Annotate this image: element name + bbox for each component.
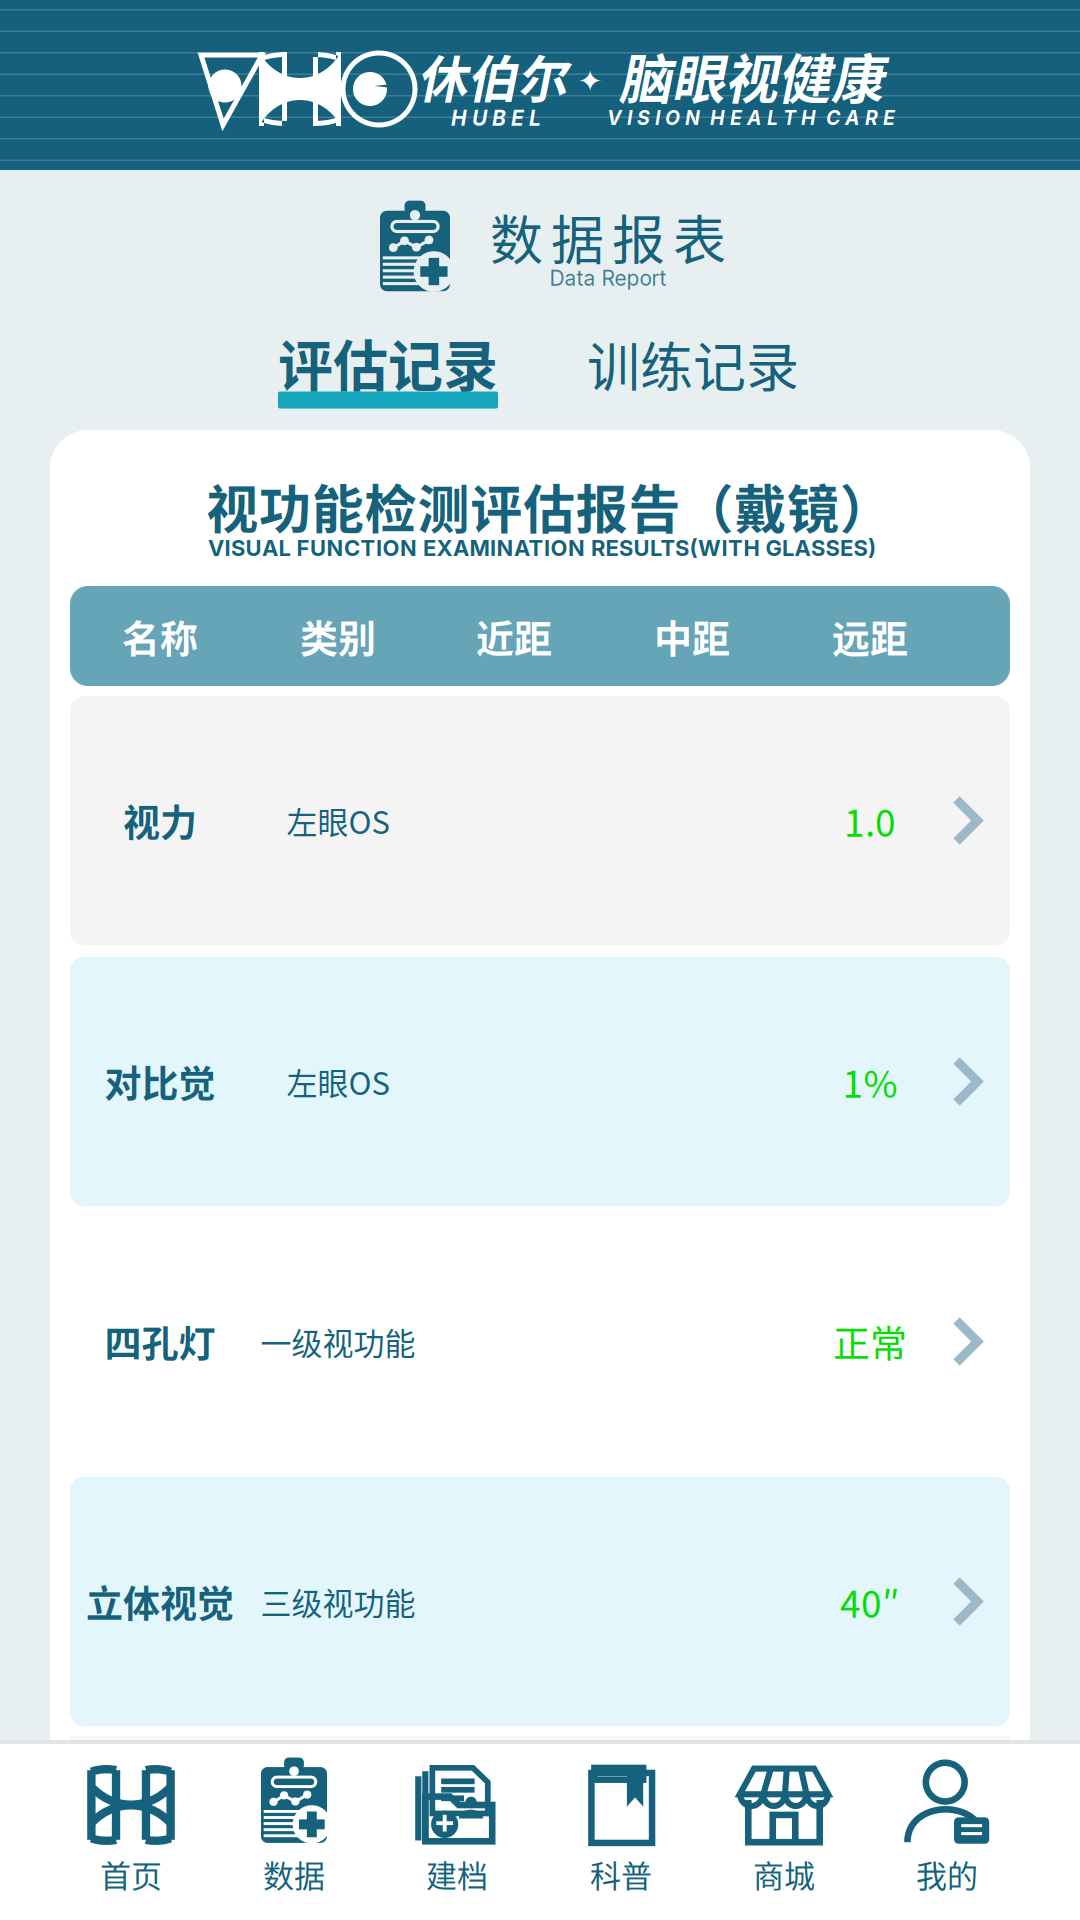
staticText: 视力: [123, 794, 197, 847]
staticText: 类别: [300, 608, 376, 663]
staticText: 视功能检测评估报告（戴镜）: [206, 468, 892, 544]
staticText: 训练记录: [587, 326, 799, 402]
staticText: 40″: [840, 1575, 900, 1628]
button[interactable]: 首页: [49, 1742, 212, 1918]
staticText: 我的: [916, 1852, 978, 1896]
staticText: 三级视功能: [260, 1579, 415, 1624]
staticText: 脑眼视健康: [618, 38, 883, 114]
button[interactable]: 科普: [539, 1742, 702, 1918]
staticText: 首页: [100, 1852, 162, 1896]
staticText: H U B E L: [451, 105, 541, 131]
staticText: 左眼OS: [286, 1059, 389, 1104]
staticText: 名称: [122, 608, 198, 663]
button[interactable]: 四孔灯: [70, 1217, 1010, 1466]
staticText: 四孔灯: [104, 1315, 215, 1368]
staticText: 休伯尔: [417, 40, 567, 112]
button[interactable]: 数据: [212, 1742, 375, 1918]
button[interactable]: 评估记录: [270, 311, 506, 417]
staticText: 立体视觉: [86, 1575, 234, 1628]
staticText: 评估记录: [278, 322, 498, 402]
staticText: 科普: [590, 1852, 652, 1896]
staticText: ✦: [577, 63, 602, 98]
button[interactable]: 商城: [702, 1742, 865, 1918]
staticText: 中距: [654, 608, 730, 663]
staticText: V I S I O N H E A L T H C A R E: [607, 106, 895, 130]
staticText: 数据: [263, 1852, 325, 1896]
staticText: Data Report: [549, 265, 666, 291]
button[interactable]: 对比觉: [70, 957, 1010, 1206]
staticText: 左眼OS: [286, 798, 389, 843]
button[interactable]: 立体视觉: [70, 1477, 1010, 1726]
staticText: VISUAL FUNCTION EXAMINATION RESULTS(WITH…: [208, 535, 876, 561]
staticText: 近距: [476, 608, 552, 663]
staticText: 数据报表: [490, 199, 726, 275]
staticText: 1.0: [844, 794, 896, 847]
staticText: 正常: [833, 1315, 907, 1368]
staticText: 建档: [426, 1852, 488, 1896]
staticText: 商城: [753, 1852, 815, 1896]
staticText: 1%: [842, 1055, 897, 1108]
staticText: 远距: [832, 608, 908, 663]
button[interactable]: 建档: [375, 1742, 538, 1918]
button[interactable]: 视力: [70, 696, 1010, 945]
staticText: 一级视功能: [260, 1319, 415, 1364]
staticText: 对比觉: [104, 1055, 215, 1108]
button[interactable]: 我的: [865, 1742, 1028, 1918]
button[interactable]: 训练记录: [587, 326, 799, 402]
